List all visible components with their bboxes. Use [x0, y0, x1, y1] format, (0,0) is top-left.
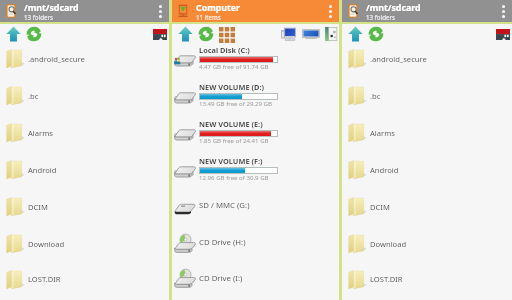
button[interactable]: SD card [152, 26, 168, 42]
button[interactable]: My computer [279, 25, 298, 44]
button[interactable]: NEW VOLUME (E:) [172, 118, 339, 155]
button[interactable]: CD Drive (H:) [172, 229, 339, 266]
staticText: NEW VOLUME (E:) [199, 119, 263, 129]
staticText: 13.49 GB free of 29.29 GB [199, 99, 273, 107]
button[interactable]: Local Disk (C:) [172, 44, 339, 81]
staticText: .android_secure [28, 54, 85, 64]
staticText: 13 folders [24, 13, 53, 21]
button[interactable]: .bc [0, 81, 169, 118]
staticText: Local Disk (C:) [199, 45, 250, 55]
staticText: Android [370, 165, 399, 175]
staticText: 13 folders [366, 13, 395, 21]
staticText: .bc [370, 91, 381, 101]
button[interactable]: Up one level [175, 24, 195, 44]
staticText: /mnt/sdcard [366, 2, 421, 14]
button[interactable]: More options [494, 0, 512, 22]
button[interactable]: Download [342, 229, 512, 266]
staticText: NEW VOLUME (F:) [199, 156, 263, 166]
button[interactable]: Grid view [217, 24, 237, 44]
staticText: DCIM [370, 202, 390, 212]
button[interactable]: Alarms [342, 118, 512, 155]
button[interactable]: Control panel [323, 26, 339, 42]
button[interactable]: NEW VOLUME (F:) [172, 155, 339, 192]
staticText: CD Drive (I:) [199, 273, 243, 284]
staticText: LOST.DIR [370, 274, 403, 284]
button[interactable]: Refresh [366, 24, 386, 44]
button[interactable]: LOST.DIR [342, 266, 512, 300]
staticText: Alarms [370, 128, 395, 138]
staticText: 4.47 GB free of 91.74 GB [199, 62, 269, 70]
button[interactable]: .android_secure [0, 44, 169, 81]
button[interactable]: Refresh [196, 24, 216, 44]
button[interactable]: SD card [495, 26, 511, 42]
button[interactable]: DCIM [0, 192, 169, 229]
button[interactable]: NEW VOLUME (D:) [172, 81, 339, 118]
button[interactable]: Refresh [24, 24, 44, 44]
button[interactable]: Alarms [0, 118, 169, 155]
button[interactable]: More options [321, 0, 339, 22]
staticText: Download [28, 239, 65, 249]
staticText: SD / MMC (G:) [199, 200, 250, 211]
button[interactable]: Download [0, 229, 169, 266]
button[interactable]: Display settings [301, 25, 320, 44]
staticText: Alarms [28, 128, 53, 138]
button[interactable]: Up one level [345, 24, 365, 44]
staticText: 12.96 GB free of 30.9 GB [199, 173, 269, 181]
button[interactable]: LOST.DIR [0, 266, 169, 300]
staticText: Download [370, 239, 407, 249]
button[interactable]: Android [0, 155, 169, 192]
staticText: /mnt/sdcard [24, 2, 79, 14]
staticText: Android [28, 165, 57, 175]
staticText: DCIM [28, 202, 48, 212]
button[interactable]: CD Drive (I:) [172, 266, 339, 300]
button[interactable]: .android_secure [342, 44, 512, 81]
staticText: Computer [196, 2, 241, 14]
staticText: .bc [28, 91, 39, 101]
staticText: CD Drive (H:) [199, 237, 246, 248]
staticText: NEW VOLUME (D:) [199, 82, 264, 92]
staticText: 1.85 GB free of 24.41 GB [199, 136, 269, 144]
button[interactable]: DCIM [342, 192, 512, 229]
button[interactable]: Android [342, 155, 512, 192]
staticText: LOST.DIR [28, 274, 61, 284]
button[interactable]: SD / MMC (G:) [172, 192, 339, 229]
staticText: .android_secure [370, 54, 427, 64]
button[interactable]: More options [151, 0, 169, 22]
button[interactable]: Up one level [3, 24, 23, 44]
staticText: 11 items [196, 13, 221, 21]
button[interactable]: .bc [342, 81, 512, 118]
